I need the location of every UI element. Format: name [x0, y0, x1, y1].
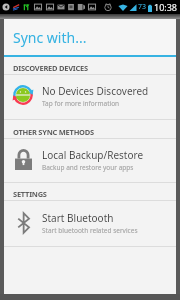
button[interactable]: No Devices Discovered [4, 75, 176, 119]
staticText: OTHER SYNC METHODS [13, 127, 94, 137]
staticText: Sync with... [13, 28, 87, 47]
staticText: Tap for more information [42, 99, 120, 108]
staticText: No Devices Discovered [42, 84, 149, 98]
staticText: Local Backup/Restore [42, 148, 144, 162]
staticText: Backup and restore your apps [42, 163, 134, 172]
button[interactable]: Local Backup/Restore [4, 139, 176, 182]
button[interactable]: Start Bluetooth [4, 201, 176, 246]
staticText: SETTINGS [13, 189, 47, 199]
staticText: 73 [138, 2, 147, 12]
staticText: Start Bluetooth [42, 211, 114, 225]
staticText: Start bluetooth related services [42, 226, 138, 235]
staticText: 10:38 [154, 1, 178, 13]
staticText: DISCOVERED DEVICES [13, 63, 88, 73]
